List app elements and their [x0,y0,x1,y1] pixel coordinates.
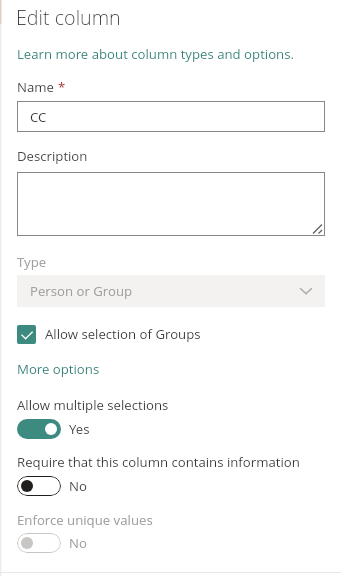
staticText: Description [17,147,88,165]
button[interactable]: Allow selection of Groups [17,324,201,344]
button[interactable]: More options [17,360,100,378]
staticText: Name [17,78,58,96]
button[interactable]: No [17,533,87,553]
staticText: Edit column [16,4,121,31]
staticText: Allow selection of Groups [45,325,201,343]
staticText: Type [17,253,47,271]
staticText: CC [30,108,47,126]
staticText: Person or Group [30,282,133,300]
button[interactable] [17,172,325,236]
staticText: No [69,477,87,495]
button[interactable]: CC [17,101,325,132]
button[interactable]: No [17,476,87,496]
staticText: No [69,534,87,552]
button[interactable]: Person or Group [17,275,325,307]
button[interactable]: Yes [17,419,90,439]
other: Open type dropdown [299,284,313,298]
staticText: * [58,78,66,96]
staticText: Enforce unique values [17,511,153,529]
staticText: Require that this column contains inform… [17,453,300,471]
staticText: Allow multiple selections [17,396,169,414]
staticText: Yes [69,420,90,438]
button[interactable]: Learn more about column types and option… [17,45,295,63]
